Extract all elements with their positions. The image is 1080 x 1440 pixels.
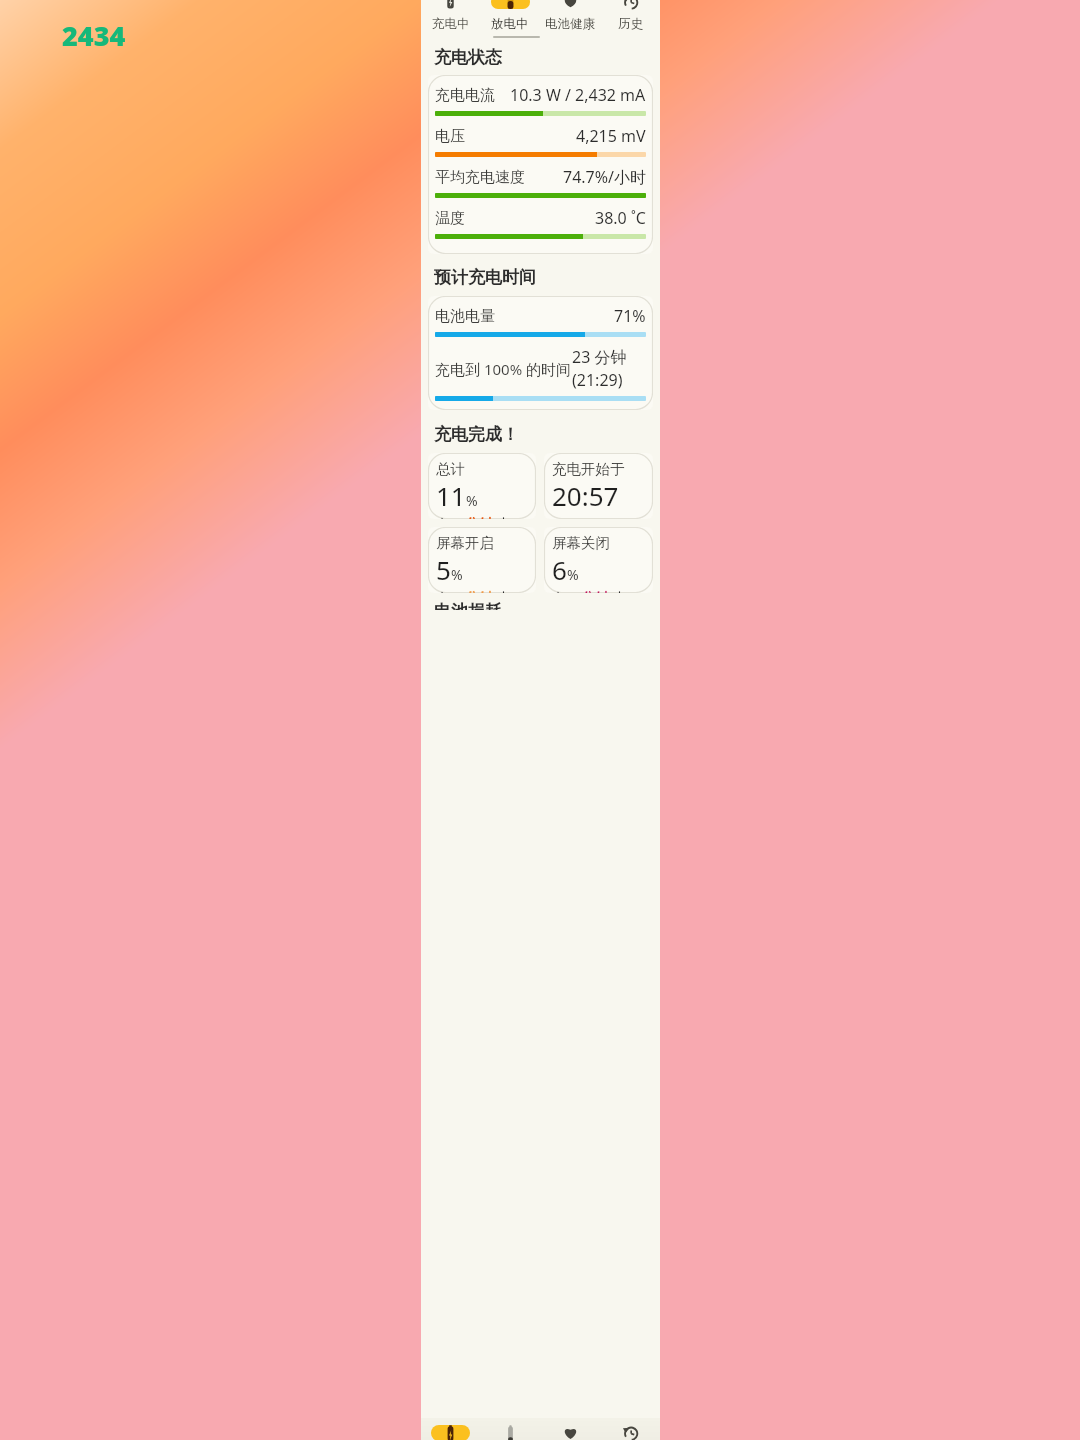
staticText: 充电中 bbox=[432, 16, 470, 32]
staticText: 20:57 bbox=[552, 478, 619, 513]
staticText: 温度 bbox=[435, 209, 465, 228]
staticText: % bbox=[567, 565, 579, 584]
button[interactable]: Charging bbox=[421, 1418, 480, 1440]
staticText: 电池电量 bbox=[435, 307, 495, 326]
staticText: 电池健康 bbox=[545, 16, 595, 32]
staticText: 屏幕开启 bbox=[436, 534, 494, 552]
staticText: 放电中 bbox=[491, 16, 529, 32]
staticText: 充电开始于 bbox=[552, 460, 625, 478]
staticText: 2434 bbox=[62, 17, 126, 54]
staticText: 预计充电时间 bbox=[434, 267, 536, 288]
staticText: 平均充电速度 bbox=[435, 168, 525, 187]
button[interactable]: 电池电量 bbox=[428, 296, 653, 410]
staticText: 历史 bbox=[618, 16, 643, 32]
staticText: 充电状态 bbox=[434, 47, 502, 68]
staticText: 5 bbox=[436, 552, 451, 587]
staticText: 在 4 分钟 内 203 mAh bbox=[552, 588, 649, 593]
button[interactable]: Battery health bbox=[540, 1418, 600, 1440]
staticText: 74.7%/小时 bbox=[563, 166, 646, 188]
staticText: 充电到 100% 的时间 bbox=[435, 359, 572, 379]
staticText: 6 bbox=[552, 552, 567, 587]
staticText: 电压 bbox=[435, 127, 465, 146]
staticText: % bbox=[466, 491, 478, 510]
button[interactable]: History bbox=[600, 1418, 660, 1440]
button[interactable]: 屏幕开启 bbox=[428, 527, 536, 593]
button[interactable]: 充电开始于 bbox=[544, 453, 653, 519]
staticText: 在 4 分钟 内 217 mAh bbox=[436, 588, 532, 593]
staticText: 4,215 mV bbox=[576, 125, 646, 147]
button[interactable]: Discharging bbox=[480, 1418, 540, 1440]
staticText: 屏幕关闭 bbox=[552, 534, 610, 552]
button[interactable]: 放电中 bbox=[480, 0, 540, 38]
staticText: 10.3 W / 2,432 mA bbox=[510, 84, 646, 106]
staticText: 在 8 分钟 内 420 mAh bbox=[436, 514, 532, 519]
staticText: 23 分钟 (21:29) bbox=[572, 346, 646, 391]
staticText: 38.0 ˚C bbox=[595, 207, 646, 229]
staticText: 充电电流 bbox=[435, 86, 495, 105]
staticText: 电池损耗 bbox=[434, 601, 502, 610]
button[interactable]: 充电电流 bbox=[428, 75, 653, 254]
button[interactable]: 总计 bbox=[428, 453, 536, 519]
staticText: 71% bbox=[614, 305, 646, 327]
staticText: 11 bbox=[436, 478, 466, 513]
button[interactable]: 充电中 bbox=[421, 0, 480, 38]
staticText: 总计 bbox=[436, 460, 465, 478]
button[interactable]: 历史 bbox=[600, 0, 660, 38]
button[interactable]: 屏幕关闭 bbox=[544, 527, 653, 593]
button[interactable]: 电池健康 bbox=[540, 0, 600, 38]
staticText: % bbox=[451, 565, 463, 584]
staticText: 充电完成！ bbox=[434, 424, 519, 445]
